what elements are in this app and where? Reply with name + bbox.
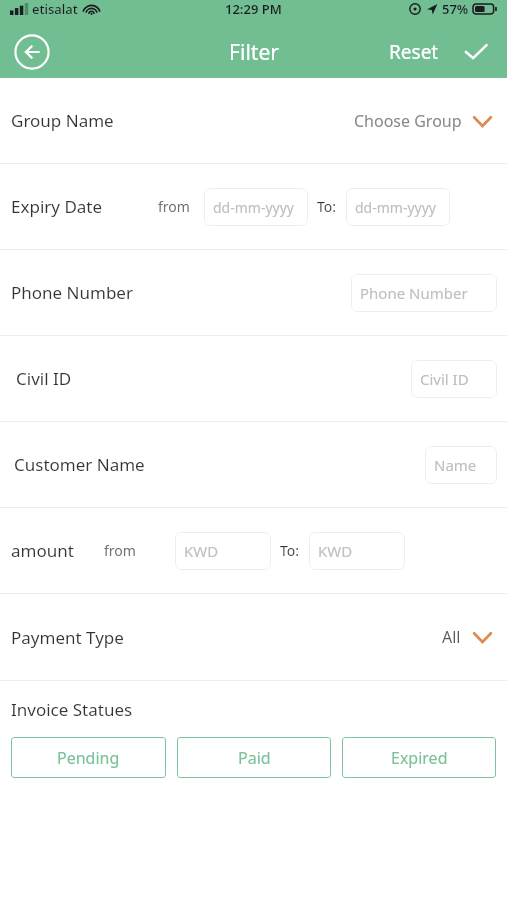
staticText: KWD	[184, 541, 219, 561]
staticText: Invoice Statues	[11, 698, 133, 721]
staticText: 57%	[442, 0, 469, 18]
staticText: Name	[434, 455, 477, 475]
button[interactable]: Expired	[342, 737, 496, 778]
staticText: etisalat	[32, 0, 78, 18]
button[interactable]: Phone Number	[351, 274, 497, 312]
button[interactable]: Reset	[385, 35, 443, 69]
staticText: Reset	[389, 39, 439, 65]
button[interactable]: Group Name	[0, 78, 507, 163]
staticText: 12:29 PM	[225, 0, 282, 18]
staticText: from	[158, 197, 190, 216]
staticText: dd-mm-yyyy	[213, 198, 294, 217]
staticText: Pending	[57, 747, 120, 769]
button[interactable]: Payment Type	[0, 594, 507, 680]
staticText: Civil ID	[16, 367, 72, 390]
button[interactable]: Pending	[11, 737, 166, 778]
staticText: Phone Number	[11, 281, 133, 304]
button[interactable]: KWD	[309, 532, 405, 570]
button[interactable]: Apply filter	[461, 37, 491, 67]
staticText: Customer Name	[14, 453, 145, 476]
button[interactable]: dd-mm-yyyy	[346, 188, 450, 226]
staticText: Choose Group	[354, 110, 462, 132]
staticText: Expiry Date	[11, 195, 103, 218]
staticText: Payment Type	[11, 626, 124, 649]
staticText: All	[442, 626, 461, 648]
staticText: Paid	[238, 747, 271, 769]
staticText: from	[104, 541, 136, 560]
staticText: Civil ID	[420, 369, 469, 389]
staticText: amount	[11, 539, 74, 562]
button[interactable]: Back	[13, 33, 51, 71]
staticText: To:	[280, 541, 300, 560]
button[interactable]: Name	[425, 446, 497, 484]
button[interactable]: Paid	[177, 737, 331, 778]
staticText: Phone Number	[360, 283, 468, 303]
button[interactable]: KWD	[175, 532, 271, 570]
staticText: Filter	[229, 38, 279, 67]
staticText: KWD	[318, 541, 353, 561]
staticText: dd-mm-yyyy	[355, 198, 436, 217]
button[interactable]: dd-mm-yyyy	[204, 188, 308, 226]
staticText: Group Name	[11, 109, 114, 132]
staticText: Expired	[391, 747, 448, 769]
button[interactable]: Civil ID	[411, 360, 497, 398]
staticText: To:	[317, 197, 337, 216]
